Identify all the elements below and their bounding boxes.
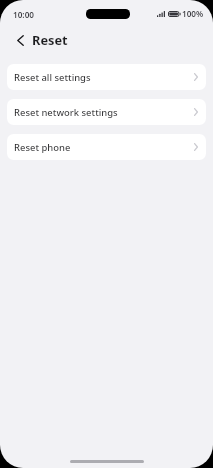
staticText: Reset <box>32 31 68 48</box>
staticText: Reset phone <box>14 141 194 154</box>
staticText: Reset network settings <box>14 106 194 119</box>
button[interactable]: Reset phone <box>7 134 206 160</box>
button[interactable]: Back <box>10 30 30 50</box>
button[interactable]: Reset network settings <box>7 99 206 125</box>
staticText: Reset all settings <box>14 71 194 84</box>
staticText: 10:00 <box>13 9 34 20</box>
staticText: 100% <box>182 8 204 19</box>
button[interactable]: Reset all settings <box>7 64 206 90</box>
